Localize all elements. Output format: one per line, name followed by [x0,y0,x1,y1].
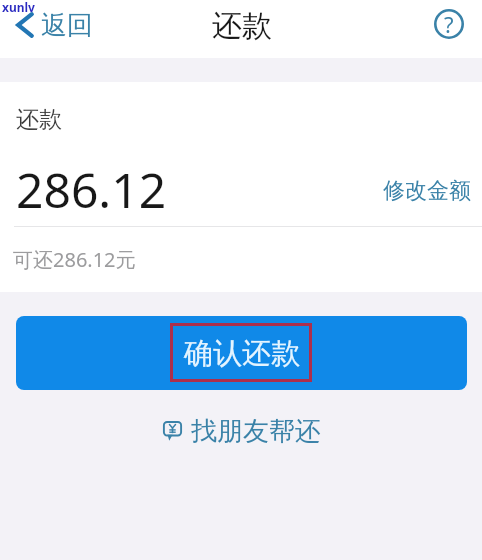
staticText: 还款 [16,105,62,134]
staticText: 286.12 [16,157,167,222]
staticText: 返回 [41,9,93,42]
staticText: 还款 [212,7,272,45]
staticText: 修改金额 [383,177,471,205]
button[interactable]: Help [429,4,469,44]
staticText: ? [444,9,454,39]
button[interactable]: 确认还款 [16,316,467,390]
button[interactable]: 找朋友帮还 [160,412,324,451]
staticText: xunlv [2,0,35,15]
button[interactable]: 修改金额 [377,172,477,210]
staticText: 找朋友帮还 [191,415,321,448]
staticText: 确认还款 [184,335,300,372]
button[interactable]: 返回 [9,4,98,46]
staticText: 可还286.12元 [13,246,136,273]
